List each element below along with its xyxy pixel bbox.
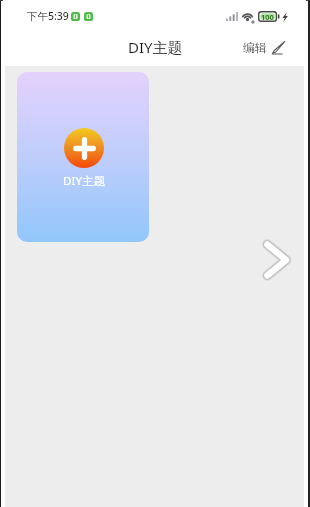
staticText: 下午5:39 <box>27 9 69 23</box>
button[interactable]: Next <box>256 236 296 284</box>
button[interactable]: DIY主题 <box>17 72 149 242</box>
staticText: DIY主题 <box>63 173 105 189</box>
staticText: 编辑 <box>243 40 267 55</box>
staticText: DIY主题 <box>128 37 183 57</box>
button[interactable]: 编辑 <box>243 40 286 55</box>
staticText: 100 <box>261 12 274 22</box>
